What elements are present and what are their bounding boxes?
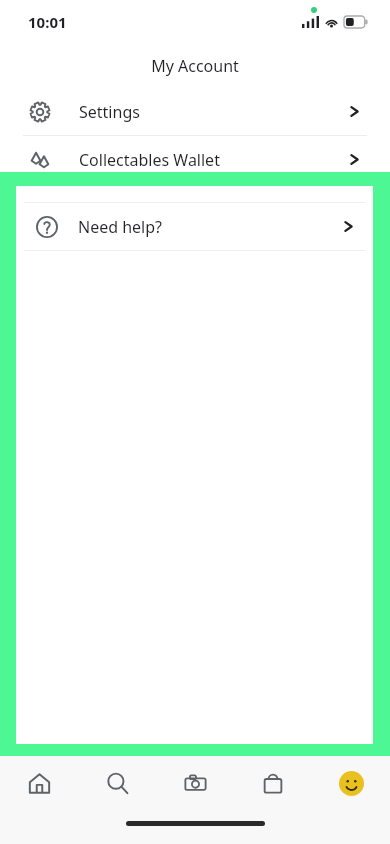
button[interactable]: Collectables Wallet	[0, 136, 390, 183]
staticText: Collectables Wallet	[79, 149, 220, 171]
staticText: 10:01	[28, 12, 67, 32]
button[interactable]: Home	[0, 756, 78, 810]
button[interactable]: Camera	[156, 756, 234, 810]
button[interactable]: Bag	[234, 756, 312, 810]
button[interactable]: Settings	[0, 88, 390, 135]
staticText: My Account	[151, 55, 239, 77]
staticText: Need help?	[79, 197, 164, 219]
button[interactable]: Search	[78, 756, 156, 810]
button[interactable]: Profile	[312, 756, 390, 810]
staticText: Need help?	[78, 216, 163, 238]
button[interactable]: Need help?	[0, 184, 390, 231]
staticText: Settings	[79, 101, 140, 123]
button[interactable]: Need help?	[16, 203, 373, 250]
